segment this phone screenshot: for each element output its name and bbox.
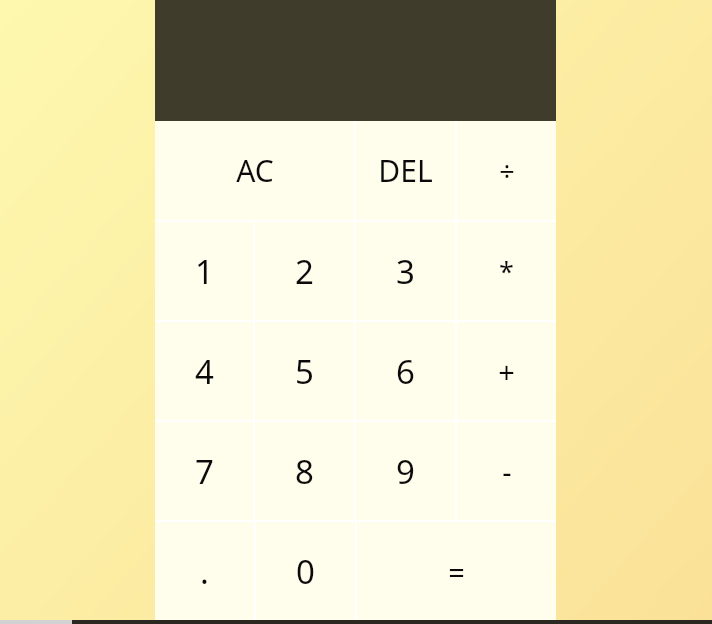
- button[interactable]: 0: [256, 522, 355, 620]
- staticText: .: [200, 549, 209, 594]
- button[interactable]: -: [457, 422, 556, 520]
- button[interactable]: 9: [356, 422, 455, 520]
- button[interactable]: *: [457, 222, 556, 320]
- staticText: +: [498, 352, 515, 391]
- button[interactable]: DEL: [356, 121, 455, 220]
- staticText: 8: [295, 449, 314, 494]
- staticText: =: [448, 552, 465, 591]
- button[interactable]: 3: [356, 222, 455, 320]
- staticText: *: [499, 253, 514, 290]
- staticText: AC: [236, 150, 274, 191]
- staticText: ÷: [499, 152, 515, 189]
- staticText: DEL: [378, 150, 433, 191]
- staticText: 7: [195, 449, 214, 494]
- button[interactable]: 8: [255, 422, 354, 520]
- staticText: 5: [295, 349, 314, 394]
- staticText: 0: [296, 549, 315, 594]
- button[interactable]: 7: [155, 422, 253, 520]
- button[interactable]: 1: [155, 222, 253, 320]
- staticText: 4: [195, 349, 214, 394]
- staticText: 1: [195, 249, 214, 294]
- staticText: -: [502, 452, 512, 491]
- staticText: 9: [396, 449, 415, 494]
- staticText: 3: [396, 249, 415, 294]
- button[interactable]: 4: [155, 322, 253, 420]
- button[interactable]: .: [155, 522, 254, 620]
- staticText: 2: [295, 249, 314, 294]
- button[interactable]: AC: [155, 121, 354, 220]
- staticText: 6: [396, 349, 415, 394]
- button[interactable]: +: [457, 322, 556, 420]
- button[interactable]: ÷: [457, 121, 556, 220]
- button[interactable]: =: [357, 522, 556, 620]
- button[interactable]: 5: [255, 322, 354, 420]
- button[interactable]: 2: [255, 222, 354, 320]
- button[interactable]: 6: [356, 322, 455, 420]
